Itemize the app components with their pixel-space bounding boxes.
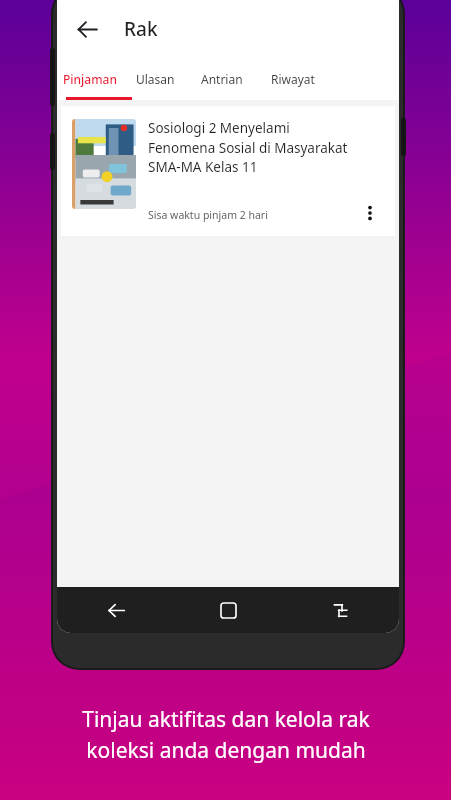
- button[interactable]: Pinjaman: [57, 58, 123, 100]
- staticText: Sosiologi 2 Menyelami Fenomena Sosial di…: [148, 119, 353, 176]
- button[interactable]: Back: [97, 591, 135, 629]
- button[interactable]: Antrian: [187, 58, 257, 100]
- button[interactable]: More options: [353, 196, 387, 230]
- staticText: Pinjaman: [63, 71, 117, 87]
- staticText: Sisa waktu pinjam 2 hari: [148, 208, 268, 222]
- button[interactable]: Sosiologi 2 Menyelami Fenomena Sosial di…: [61, 106, 395, 236]
- button[interactable]: Riwayat: [257, 58, 329, 100]
- button[interactable]: Back: [66, 8, 108, 50]
- button[interactable]: Home: [209, 591, 247, 629]
- staticText: Antrian: [201, 71, 243, 87]
- button[interactable]: Recent apps: [321, 591, 359, 629]
- staticText: Tinjau aktifitas dan kelola rak koleksi …: [82, 705, 370, 764]
- button[interactable]: Ulasan: [123, 58, 187, 100]
- staticText: Rak: [124, 16, 158, 42]
- staticText: Ulasan: [136, 71, 175, 87]
- staticText: Riwayat: [271, 71, 315, 87]
